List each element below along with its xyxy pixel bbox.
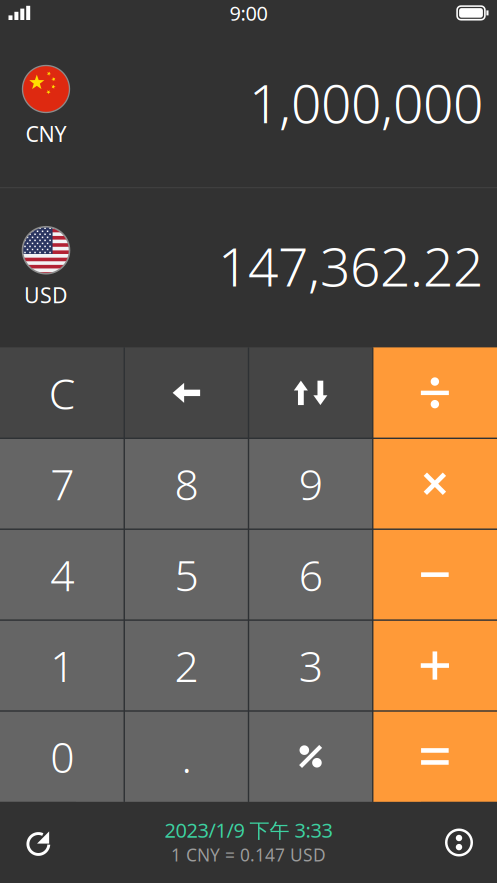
button[interactable]: CNY [0,26,497,187]
button[interactable]: Percent [248,711,373,802]
button[interactable]: 7 [0,438,124,529]
button[interactable]: 1 [0,620,124,711]
staticText: 9 [299,455,323,512]
button[interactable]: Backspace [124,347,248,438]
button[interactable]: Subtract [373,529,497,620]
staticText: 8 [174,455,198,512]
staticText: CNY [25,119,66,148]
staticText: USD [24,281,68,309]
staticText: 5 [174,546,198,603]
button[interactable]: . [124,711,248,802]
button[interactable]: 9 [248,438,373,529]
button[interactable]: 3 [248,620,373,711]
staticText: 147,362.22 [218,230,483,301]
staticText: 4 [50,546,74,603]
button[interactable]: 8 [124,438,248,529]
button[interactable]: Divide [373,347,497,438]
staticText: 2023/1/9 下午 3:33 [164,817,332,843]
staticText: 1 CNY = 0.147 USD [171,843,326,866]
button[interactable]: Add [373,620,497,711]
staticText: 1 [50,637,74,694]
staticText: 0 [50,728,74,785]
button[interactable]: More options [421,802,497,883]
staticText: . [181,728,191,785]
button[interactable]: 6 [248,529,373,620]
staticText: 7 [50,455,74,512]
button[interactable]: Swap currencies [248,347,373,438]
button[interactable]: USD [0,188,497,347]
button[interactable]: Multiply [373,438,497,529]
staticText: 2 [174,637,198,694]
button[interactable]: Clear [0,347,124,438]
staticText: 1,000,000 [249,67,483,138]
staticText: 6 [299,546,323,603]
staticText: C [49,364,76,421]
button[interactable]: Refresh rates [0,802,76,883]
staticText: 3 [299,637,323,694]
button[interactable]: 4 [0,529,124,620]
button[interactable]: Equals [373,711,497,802]
button[interactable]: 0 [0,711,124,802]
button[interactable]: 5 [124,529,248,620]
button[interactable]: 2 [124,620,248,711]
staticText: 9:00 [229,0,267,26]
